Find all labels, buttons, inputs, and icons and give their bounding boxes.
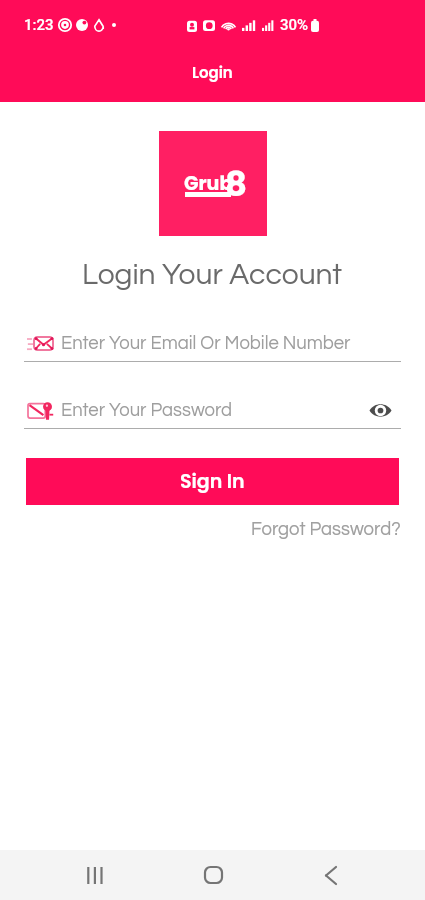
staticText: Enter Your Email Or Mobile Number xyxy=(61,334,351,353)
staticText: Enter Your Password xyxy=(61,401,233,420)
staticText: Grub xyxy=(184,170,233,197)
staticText: Login Your Account xyxy=(82,259,343,290)
staticText: 30% xyxy=(280,16,309,34)
staticText: Login xyxy=(192,62,233,83)
button[interactable]: Sign In xyxy=(26,458,399,505)
button[interactable]: Recent apps xyxy=(35,850,154,900)
staticText: Sign In xyxy=(180,468,245,495)
staticText: 1:23 xyxy=(24,16,54,34)
staticText: 8 xyxy=(225,160,248,208)
button[interactable]: Show password xyxy=(367,397,393,423)
button[interactable]: Back xyxy=(272,850,390,900)
button[interactable]: Home xyxy=(154,850,272,900)
button[interactable]: Forgot Password? xyxy=(251,520,401,539)
